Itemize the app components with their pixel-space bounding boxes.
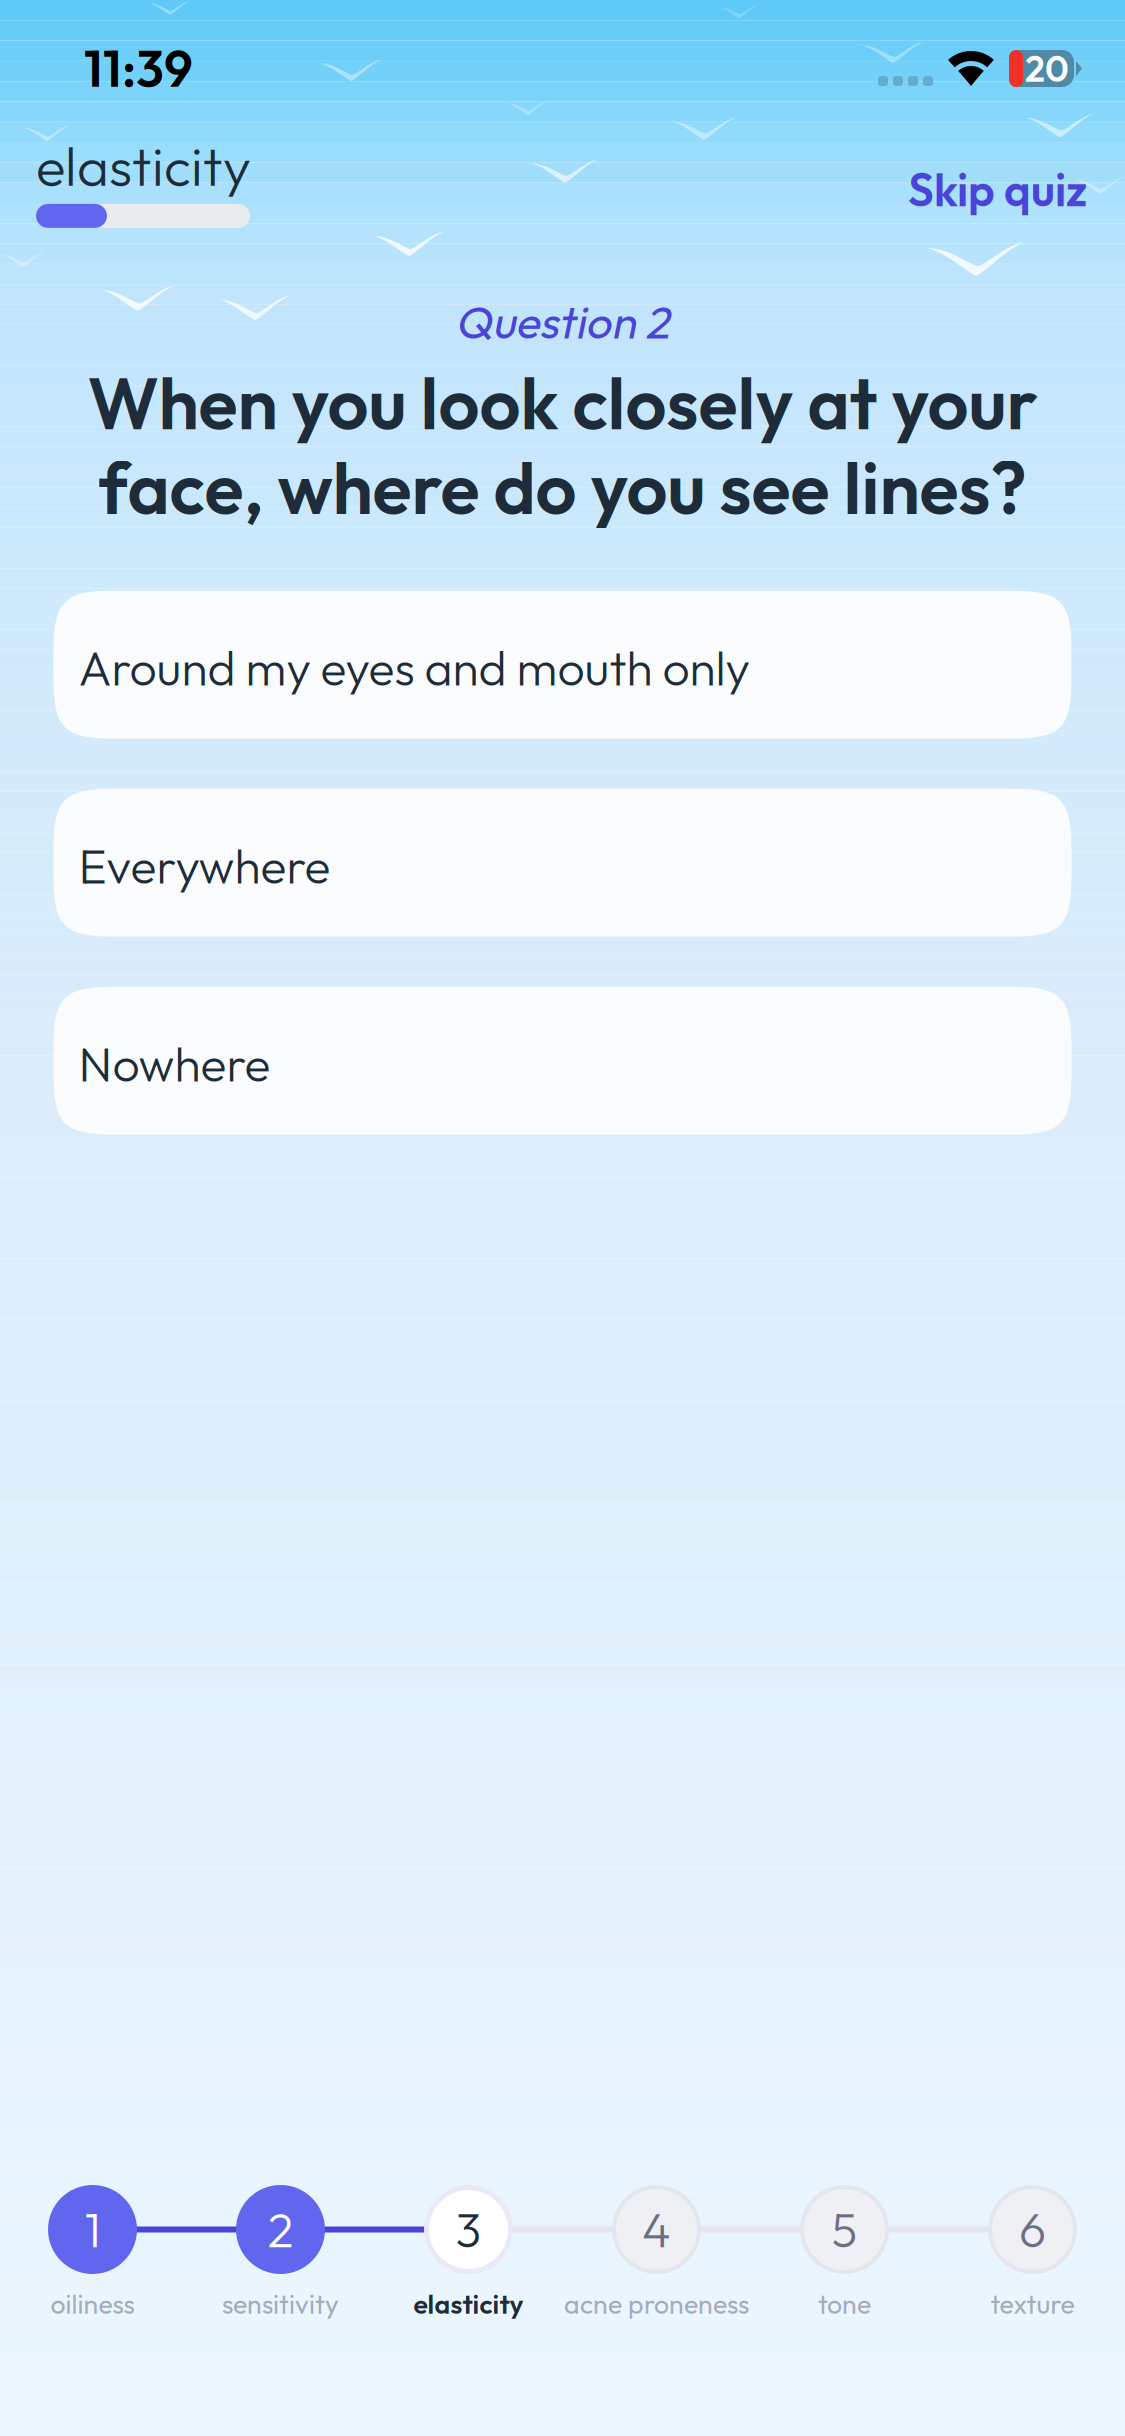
staticText: 11:39 <box>84 36 193 100</box>
button[interactable]: Around my eyes and mouth only <box>53 591 1071 739</box>
staticText: elasticity <box>413 2287 523 2321</box>
staticText: texture <box>990 2287 1074 2321</box>
staticText: elasticity <box>36 131 251 200</box>
button[interactable]: 6 <box>938 2185 1125 2274</box>
button[interactable]: Nowhere <box>53 987 1071 1135</box>
staticText: Question 2 <box>455 293 670 350</box>
button[interactable]: 2 <box>186 2185 374 2274</box>
staticText: Nowhere <box>78 1033 270 1094</box>
staticText: 1 <box>84 2199 100 2260</box>
staticText: Skip quiz <box>908 161 1087 218</box>
staticText: face, where do you see lines? <box>98 442 1026 533</box>
staticText: Everywhere <box>78 835 330 896</box>
button[interactable]: Everywhere <box>53 789 1071 937</box>
button[interactable]: 1 <box>0 2185 186 2274</box>
staticText: oiliness <box>50 2287 134 2321</box>
staticText: 2 <box>267 2199 293 2260</box>
staticText: 4 <box>642 2199 671 2260</box>
button[interactable]: 5 <box>750 2185 938 2274</box>
staticText: When you look closely at your <box>87 357 1037 448</box>
button[interactable]: 3 <box>374 2185 562 2274</box>
staticText: 3 <box>455 2199 481 2260</box>
staticText: 5 <box>831 2199 857 2260</box>
staticText: Around my eyes and mouth only <box>78 637 749 698</box>
staticText: sensitivity <box>222 2287 339 2321</box>
staticText: 6 <box>1019 2199 1046 2260</box>
button[interactable]: Skip quiz <box>878 131 1093 242</box>
staticText: tone <box>818 2287 871 2321</box>
staticText: acne proneness <box>564 2287 749 2321</box>
staticText: 20 <box>1025 46 1069 91</box>
button[interactable]: 4 <box>562 2185 750 2274</box>
